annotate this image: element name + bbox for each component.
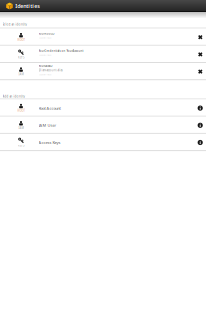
staticText: IAM [18,72,23,76]
staticText: Access Keys [39,140,61,145]
staticText: YourCredentials on YourAccount [39,49,84,53]
staticText: KEYS [18,56,24,59]
button[interactable]: ROOT [0,99,206,117]
staticText: IAM [18,126,23,130]
staticText: Logged in ~1m ago [39,37,52,39]
staticText: Root Account [39,105,61,111]
button[interactable]: KEYS [0,46,206,63]
staticText: YourIAMID [39,64,53,68]
staticText: Logged in ~1m ago [39,54,52,56]
staticText: Identities [15,2,40,10]
staticText: Add an identity [2,95,24,98]
staticText: Select an identity [2,23,26,26]
staticText: ROOT [17,38,24,42]
button[interactable]: IAM [0,117,206,134]
staticText: @ iam-account-alias [39,68,63,72]
staticText: IAM User [39,123,57,128]
staticText: ROOT [17,109,24,112]
staticText: KEYS [18,144,24,147]
staticText: Logged in ~1m ago [39,74,52,76]
button[interactable]: IAM [0,63,206,80]
button[interactable]: ROOT [0,29,206,46]
staticText: YourRootID [39,32,55,35]
button[interactable]: KEYS [0,134,206,151]
